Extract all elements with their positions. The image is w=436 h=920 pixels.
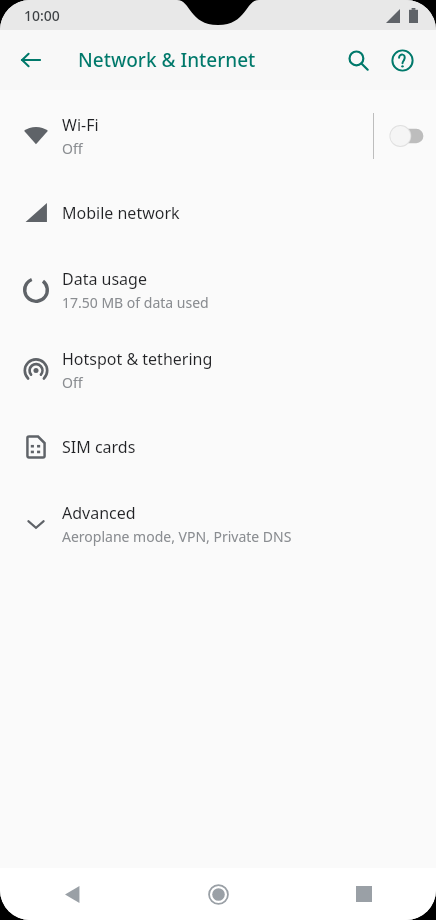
button[interactable]: Recents [291, 868, 436, 920]
staticText: Off [62, 139, 83, 158]
button[interactable]: Wi-Fi toggle [374, 112, 436, 160]
button[interactable]: Back [0, 868, 146, 920]
button[interactable]: Help [380, 38, 424, 82]
button[interactable]: Home [146, 868, 291, 920]
button[interactable]: Mobile network [0, 176, 436, 250]
button[interactable]: Data usage [0, 250, 436, 330]
staticText: Data usage [62, 268, 147, 290]
staticText: SIM cards [62, 436, 136, 458]
staticText: Off [62, 373, 83, 392]
button[interactable]: Wi-Fi [0, 96, 436, 176]
staticText: Aeroplane mode, VPN, Private DNS [62, 527, 292, 546]
staticText: Network & Internet [78, 47, 256, 73]
staticText: Wi-Fi [62, 114, 99, 136]
staticText: 17.50 MB of data used [62, 293, 209, 312]
button[interactable]: Back [10, 39, 52, 81]
button[interactable]: Advanced [0, 484, 436, 564]
button[interactable]: Hotspot & tethering [0, 330, 436, 410]
button[interactable]: Search [336, 38, 380, 82]
staticText: Mobile network [62, 202, 180, 224]
button[interactable]: SIM cards [0, 410, 436, 484]
staticText: 10:00 [24, 6, 60, 25]
staticText: Hotspot & tethering [62, 348, 213, 370]
staticText: Advanced [62, 502, 136, 524]
